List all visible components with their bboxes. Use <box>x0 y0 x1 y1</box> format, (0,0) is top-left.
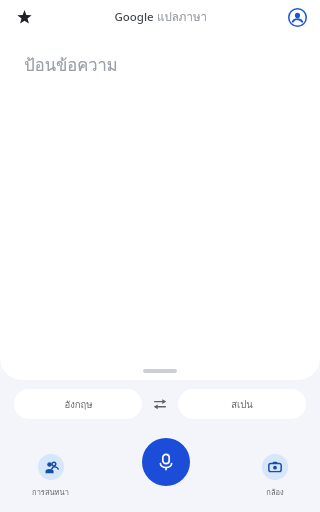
button[interactable]: Saved <box>8 1 40 33</box>
button[interactable]: Camera <box>258 452 292 500</box>
button[interactable]: Swap languages <box>144 388 176 420</box>
staticText: Google <box>114 9 154 25</box>
button[interactable]: สเปน <box>178 389 306 419</box>
staticText: ป้อนข้อความ <box>24 52 118 78</box>
staticText: แปลภาษา <box>157 8 207 26</box>
staticText: การสนทนา <box>32 486 69 498</box>
button[interactable]: Account <box>282 2 312 32</box>
button[interactable]: Voice input <box>142 438 190 486</box>
button[interactable]: ป้อนข้อความ <box>0 34 320 362</box>
button[interactable]: Conversation <box>28 452 73 500</box>
staticText: อังกฤษ <box>64 397 93 412</box>
button[interactable]: อังกฤษ <box>14 389 142 419</box>
staticText: สเปน <box>231 397 253 412</box>
staticText: กล้อง <box>266 486 284 498</box>
